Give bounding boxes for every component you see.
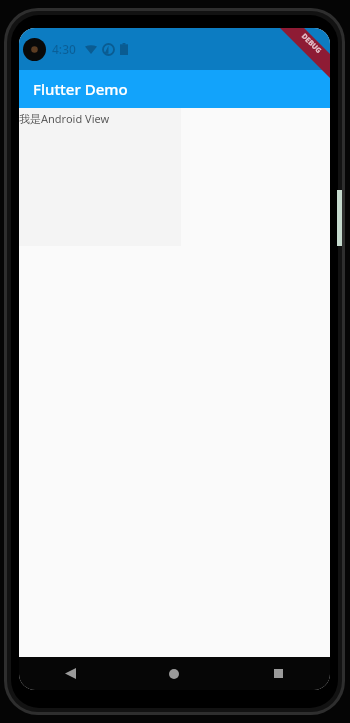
staticText: 4:30 — [52, 41, 76, 57]
button[interactable]: Back — [19, 657, 122, 690]
button[interactable]: Home — [122, 657, 226, 690]
button[interactable]: Flutter Demo — [19, 70, 330, 108]
staticText: 我是Android View — [19, 111, 110, 126]
button[interactable]: Recents — [226, 657, 330, 690]
staticText: DEBUG — [299, 32, 324, 56]
staticText: Flutter Demo — [33, 79, 128, 99]
